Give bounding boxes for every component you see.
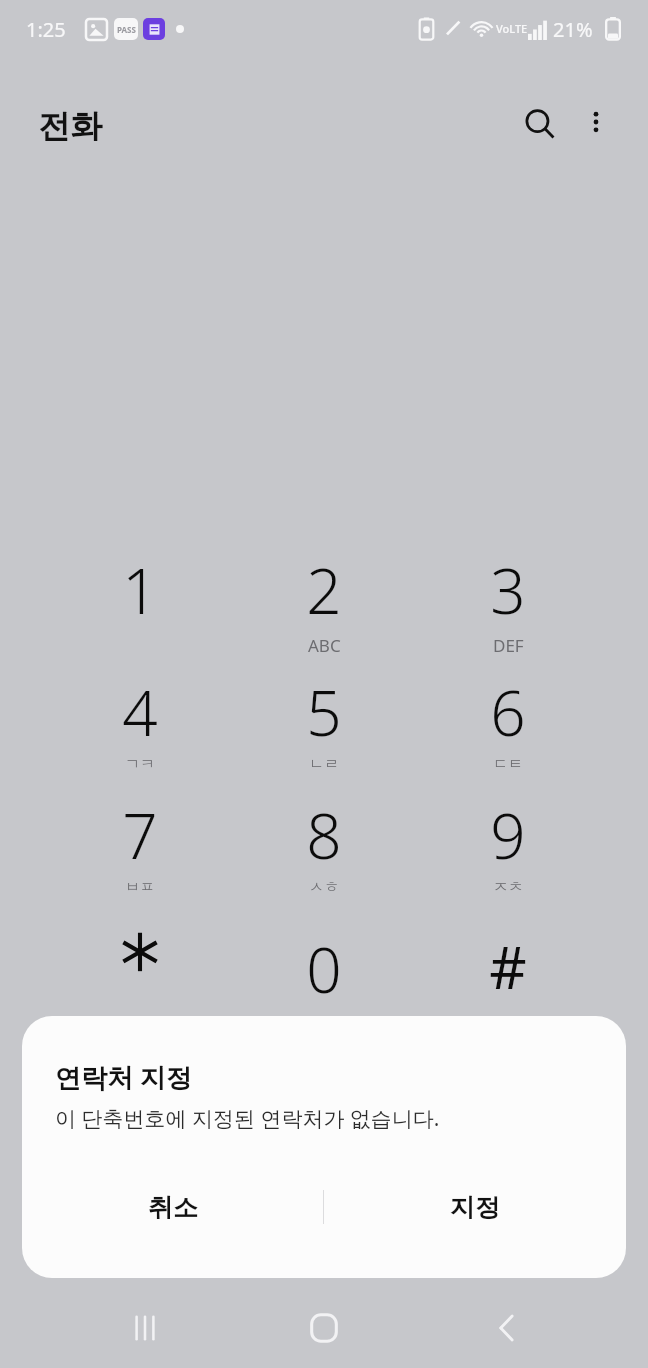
staticText: ㅇㅁ — [309, 1013, 339, 1032]
staticText: PASS — [117, 24, 136, 35]
button[interactable]: 0 — [232, 915, 416, 1035]
staticText: ㄱㅋ — [125, 755, 155, 774]
button[interactable]: 3 — [416, 536, 600, 656]
staticText: 2 — [306, 548, 342, 632]
staticText: VoLTE — [496, 21, 528, 36]
staticText: 1 — [122, 548, 158, 632]
staticText: ㄴㄹ — [309, 755, 339, 774]
button[interactable]: 뒤로 — [467, 1298, 547, 1358]
staticText: ㅂㅍ — [125, 878, 155, 897]
staticText: 지정 — [450, 1192, 500, 1223]
staticText: 이 단축번호에 지정된 연락처가 없습니다. — [55, 1104, 440, 1133]
staticText: ABC — [308, 634, 341, 656]
button[interactable]: 9 — [416, 781, 600, 901]
staticText: 8 — [306, 793, 342, 877]
staticText: ㅅㅎ — [309, 878, 339, 897]
staticText: 4 — [122, 670, 158, 754]
staticText: 21% — [553, 16, 593, 43]
staticText: 9 — [490, 793, 526, 877]
staticText: # — [489, 927, 527, 1006]
staticText: 연락처 지정 — [55, 1059, 192, 1095]
button[interactable]: 홈 — [284, 1298, 364, 1358]
staticText: 5 — [306, 670, 342, 754]
button[interactable]: 검색 — [508, 92, 572, 156]
button[interactable]: 더보기 — [566, 92, 626, 152]
staticText: ㄷㅌ — [493, 755, 523, 774]
button[interactable]: 취소 — [22, 1168, 323, 1246]
staticText: 3 — [490, 548, 526, 632]
button[interactable]: 4 — [48, 658, 232, 778]
button[interactable]: 6 — [416, 658, 600, 778]
button[interactable]: # — [416, 915, 600, 1035]
button[interactable]: 2 — [232, 536, 416, 656]
button[interactable]: 8 — [232, 781, 416, 901]
staticText: DEF — [493, 634, 524, 656]
staticText: 1:25 — [26, 16, 66, 43]
staticText: 0 — [306, 927, 342, 1011]
staticText: ㅈㅊ — [493, 878, 523, 897]
button[interactable]: 최근 앱 — [105, 1298, 185, 1358]
button[interactable]: 5 — [232, 658, 416, 778]
staticText: 취소 — [148, 1192, 198, 1223]
staticText: 전화 — [38, 106, 102, 146]
button[interactable]: 7 — [48, 781, 232, 901]
button[interactable]: * — [48, 915, 232, 1035]
button[interactable]: 지정 — [324, 1168, 626, 1246]
staticText: 6 — [490, 670, 526, 754]
staticText: 7 — [122, 793, 158, 877]
button[interactable]: 1 — [48, 536, 232, 656]
